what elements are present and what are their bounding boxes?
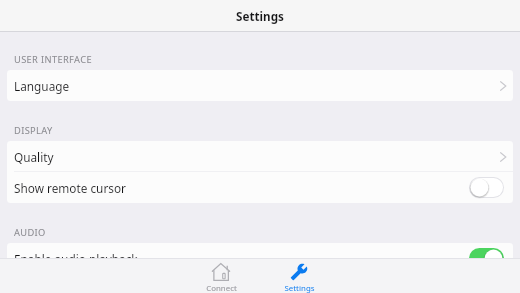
staticText: Settings [236, 8, 284, 24]
staticText: Enable audio playback [14, 251, 138, 258]
staticText: Settings [284, 283, 315, 293]
staticText: Quality [14, 149, 54, 165]
staticText: AUDIO [14, 226, 46, 239]
button[interactable]: Switch off [469, 177, 504, 198]
staticText: Connect [206, 283, 237, 293]
button[interactable]: Switch on [469, 248, 504, 258]
staticText: USER INTERFACE [14, 53, 92, 66]
button[interactable]: Show remote cursor [7, 172, 513, 203]
button[interactable]: Settings [264, 258, 334, 293]
staticText: Show remote cursor [14, 180, 126, 196]
staticText: Language [14, 78, 70, 94]
staticText: DISPLAY [14, 124, 53, 137]
button[interactable]: Language [7, 70, 513, 101]
button[interactable]: Connect [186, 258, 256, 293]
button[interactable]: Quality [7, 141, 513, 172]
button[interactable]: Enable audio playback [7, 243, 513, 258]
